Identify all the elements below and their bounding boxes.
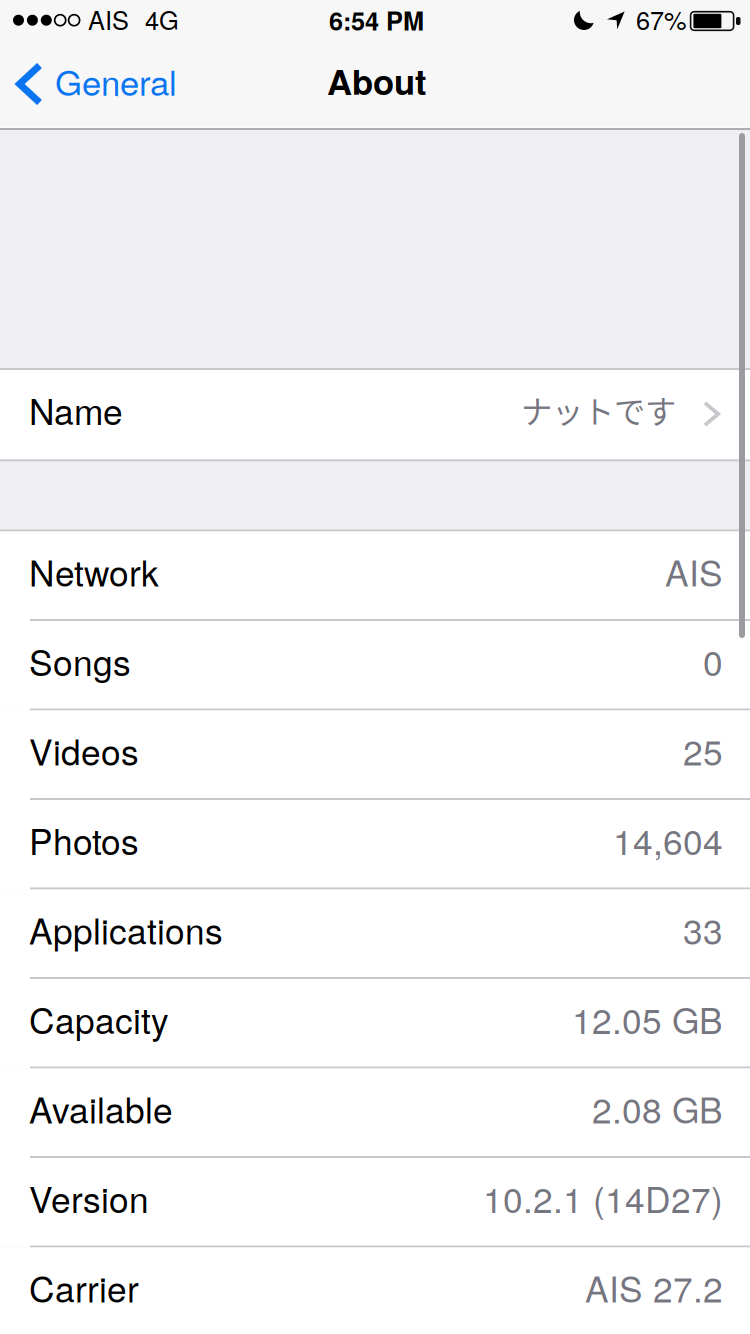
staticText: General xyxy=(55,56,177,106)
staticText: AIS 27.2 xyxy=(585,1262,723,1313)
staticText: 25 xyxy=(683,725,723,776)
button[interactable]: Carrier xyxy=(0,1247,750,1334)
staticText: Version xyxy=(29,1172,149,1223)
staticText: Applications xyxy=(29,904,223,955)
staticText: 4G xyxy=(145,1,179,37)
staticText: Songs xyxy=(29,635,131,686)
staticText: 2.08 GB xyxy=(592,1083,723,1134)
staticText: 10.2.1 (14D27) xyxy=(483,1172,723,1223)
button[interactable]: Videos xyxy=(0,710,750,800)
staticText: 67% xyxy=(636,1,687,37)
staticText: About xyxy=(327,56,427,106)
button[interactable]: General xyxy=(0,46,190,122)
button[interactable]: Version xyxy=(0,1158,750,1247)
staticText: Capacity xyxy=(29,993,169,1044)
staticText: 14,604 xyxy=(613,814,723,865)
staticText: AIS xyxy=(88,1,129,37)
button[interactable]: Name xyxy=(0,370,750,459)
staticText: Photos xyxy=(29,814,139,865)
staticText: AIS xyxy=(665,546,723,597)
staticText: ナットです xyxy=(521,387,676,432)
staticText: 33 xyxy=(683,904,723,955)
button[interactable]: Photos xyxy=(0,800,750,889)
button[interactable]: Network xyxy=(0,531,750,621)
staticText: Available xyxy=(29,1083,173,1134)
staticText: Carrier xyxy=(29,1262,139,1313)
button[interactable]: Capacity xyxy=(0,979,750,1068)
staticText: Videos xyxy=(29,725,139,776)
button[interactable]: Available xyxy=(0,1068,750,1158)
staticText: 12.05 GB xyxy=(572,993,723,1044)
staticText: Name xyxy=(29,384,123,435)
staticText: 0 xyxy=(703,635,723,686)
staticText: Network xyxy=(29,546,159,597)
button[interactable]: Songs xyxy=(0,621,750,710)
button[interactable]: Applications xyxy=(0,889,750,979)
staticText: 6:54 PM xyxy=(329,2,424,38)
